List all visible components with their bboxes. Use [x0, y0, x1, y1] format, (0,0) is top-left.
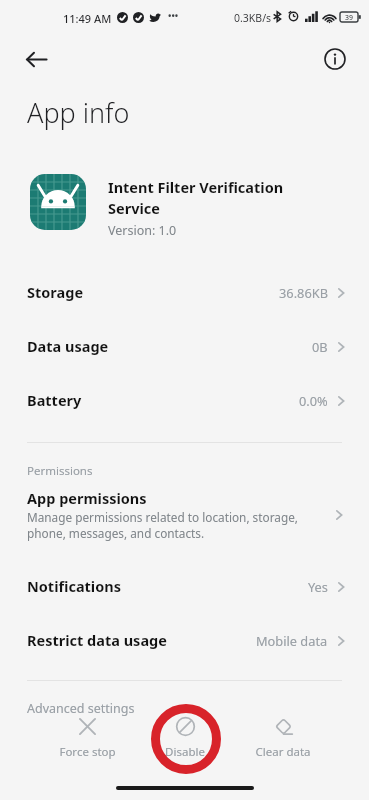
- staticText: Intent Filter Verification: [108, 177, 284, 197]
- staticText: 11:49 AM: [63, 11, 112, 26]
- button[interactable]: Storage: [0, 272, 369, 312]
- staticText: Manage permissions related to location, …: [27, 509, 298, 525]
- button[interactable]: Disable: [147, 716, 223, 760]
- button[interactable]: Notifications: [0, 566, 369, 606]
- staticText: Version: 1.0: [108, 222, 177, 239]
- staticText: 0B: [312, 338, 328, 355]
- staticText: App permissions: [27, 488, 147, 508]
- staticText: •••: [168, 9, 179, 21]
- button[interactable]: Back: [16, 39, 56, 79]
- staticText: Advanced settings: [27, 700, 135, 717]
- staticText: Battery: [27, 390, 82, 410]
- staticText: Permissions: [27, 463, 93, 479]
- staticText: Mobile data: [256, 632, 328, 649]
- staticText: phone, messages, and contacts.: [27, 525, 205, 541]
- staticText: Disable: [165, 744, 205, 760]
- staticText: 0.3KB/s: [234, 11, 272, 25]
- staticText: Clear data: [255, 744, 311, 760]
- staticText: Notifications: [27, 576, 121, 596]
- staticText: Yes: [308, 578, 328, 595]
- button[interactable]: Force stop: [49, 716, 125, 760]
- staticText: Storage: [27, 282, 84, 302]
- button[interactable]: App permissions: [0, 484, 369, 546]
- staticText: 0.0%: [299, 392, 328, 409]
- button[interactable]: App details: [315, 39, 355, 79]
- button[interactable]: Clear data: [245, 716, 321, 760]
- staticText: 36.86KB: [279, 284, 328, 301]
- staticText: Service: [108, 198, 160, 218]
- button[interactable]: Data usage: [0, 326, 369, 366]
- staticText: Restrict data usage: [27, 630, 167, 650]
- staticText: App info: [27, 94, 130, 131]
- staticText: Data usage: [27, 336, 109, 356]
- button[interactable]: Restrict data usage: [0, 620, 369, 660]
- staticText: 39: [345, 13, 354, 23]
- button[interactable]: Battery: [0, 380, 369, 420]
- staticText: Force stop: [59, 744, 116, 760]
